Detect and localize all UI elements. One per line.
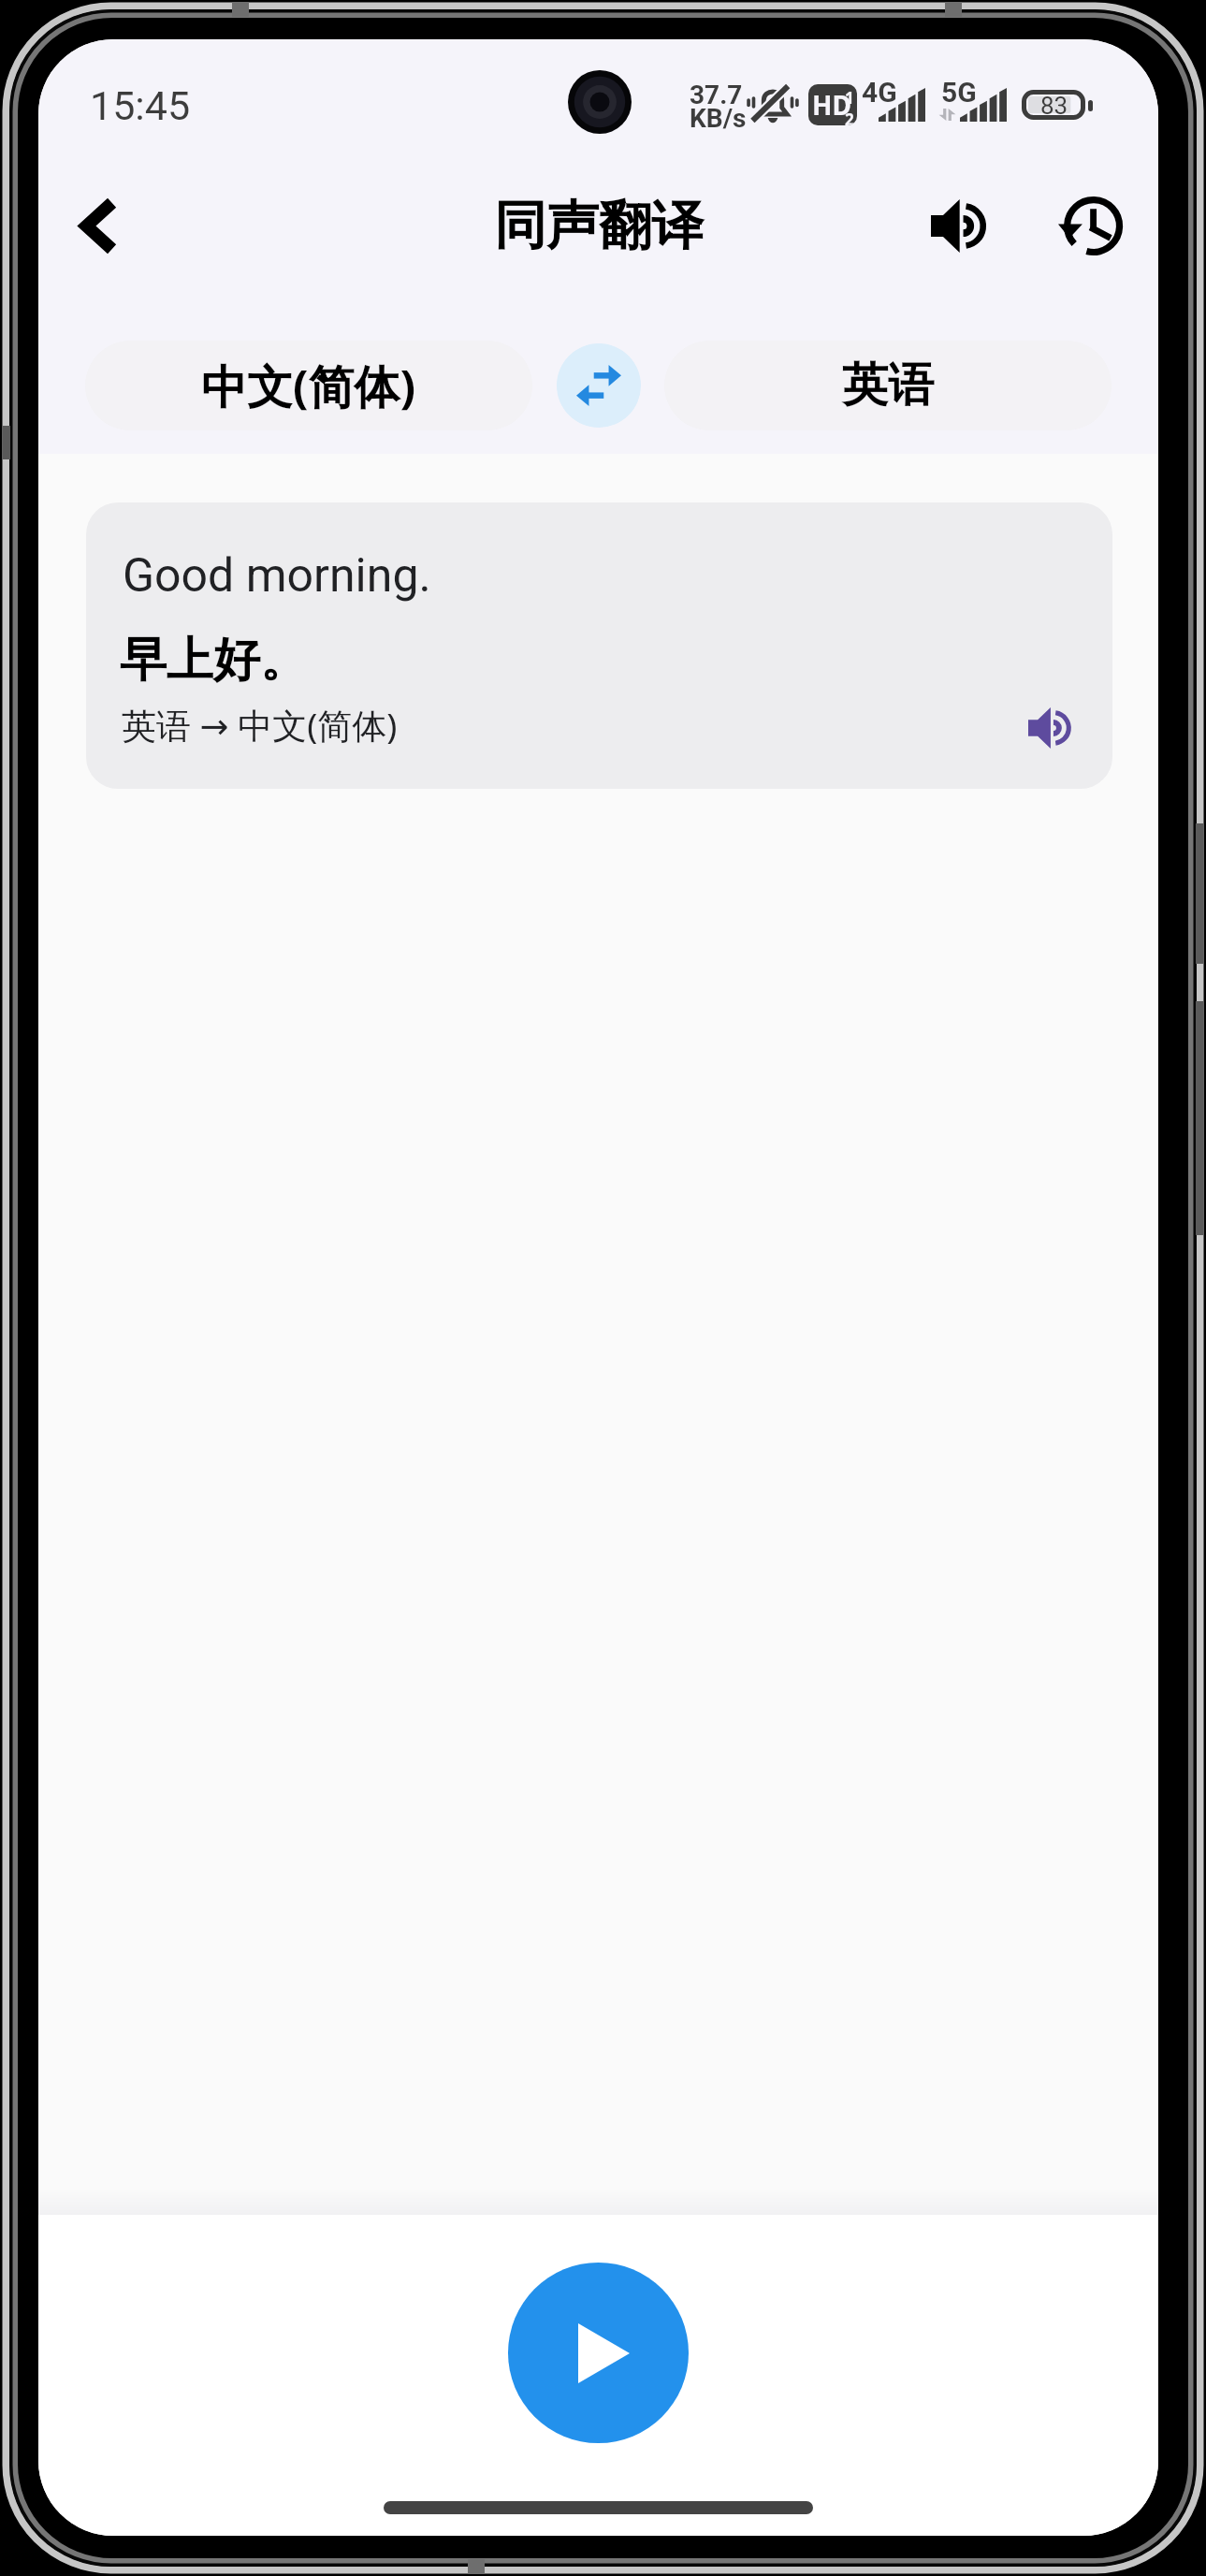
staticText: KB/s	[690, 103, 747, 134]
button[interactable]: Swap languages	[557, 343, 641, 428]
staticText: 早上好。	[120, 631, 307, 690]
staticText: 37.7	[690, 80, 743, 110]
staticText: 英语 → 中文(简体)	[122, 701, 398, 749]
staticText: 1	[845, 87, 854, 109]
staticText: 2	[845, 109, 854, 125]
staticText: 同声翻译	[494, 193, 704, 259]
staticText: 4G	[862, 76, 897, 109]
staticText: 15:45	[90, 82, 191, 129]
button[interactable]: Play translation	[1016, 694, 1083, 762]
button[interactable]: Back	[43, 169, 155, 282]
button[interactable]: 中文(简体)	[85, 341, 532, 430]
button[interactable]: Volume	[902, 169, 1014, 282]
staticText: 英语	[842, 357, 934, 415]
button[interactable]: History	[1034, 169, 1146, 282]
staticText: 5G	[941, 76, 977, 109]
button[interactable]: 英语	[664, 341, 1112, 430]
staticText: 中文(简体)	[201, 355, 416, 417]
button[interactable]: Start translation	[508, 2263, 689, 2443]
staticText: Good morning.	[123, 548, 431, 604]
button[interactable]: Good morning.	[86, 502, 1112, 789]
staticText: HD	[812, 87, 851, 123]
staticText: 83	[1040, 92, 1068, 120]
